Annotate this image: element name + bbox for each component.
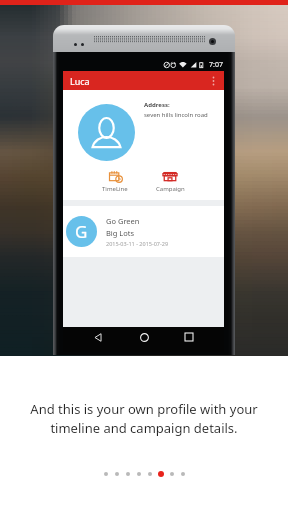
staticText: And this is your own profile with your t… bbox=[30, 400, 258, 437]
button[interactable] bbox=[122, 468, 133, 479]
staticText: 2015-03-11 - 2015-07-29 bbox=[106, 240, 169, 247]
staticText: G bbox=[75, 220, 88, 243]
staticText: Luca bbox=[70, 75, 90, 87]
button[interactable]: Home bbox=[134, 327, 154, 347]
button[interactable] bbox=[166, 468, 177, 479]
staticText: seven hills lincoln road bbox=[144, 111, 208, 119]
button[interactable] bbox=[100, 468, 111, 479]
button[interactable] bbox=[177, 468, 188, 479]
staticText: TimeLine bbox=[102, 185, 128, 193]
staticText: 7:07 bbox=[209, 60, 223, 70]
staticText: Big Lots bbox=[106, 228, 135, 238]
button[interactable]: Campaign bbox=[153, 170, 187, 193]
staticText: Go Green bbox=[106, 216, 140, 226]
button[interactable]: Profile photo bbox=[78, 104, 135, 161]
button[interactable] bbox=[133, 468, 144, 479]
button[interactable]: G bbox=[66, 206, 224, 257]
button[interactable] bbox=[155, 468, 166, 479]
staticText: Address: bbox=[144, 101, 170, 109]
button[interactable]: More options bbox=[207, 75, 219, 87]
button[interactable]: TimeLine bbox=[99, 170, 131, 193]
staticText: Campaign bbox=[156, 185, 185, 193]
button[interactable]: Back bbox=[88, 327, 108, 347]
button[interactable] bbox=[111, 468, 122, 479]
button[interactable]: Recents bbox=[179, 327, 199, 347]
button[interactable] bbox=[144, 468, 155, 479]
